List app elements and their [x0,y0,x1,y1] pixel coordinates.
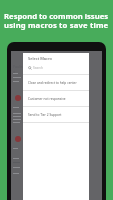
staticText: Search [33,66,43,70]
staticText: Customer not responsive [28,97,66,101]
staticText: Paulina [13,64,24,74]
button[interactable]: Send to Tier 2 Support [23,107,89,122]
staticText: Respond to common issues [4,11,109,21]
staticText: using macros to save time [4,20,109,30]
button[interactable]: Customer not responsive [23,91,89,106]
other: Search [28,66,32,70]
staticText: Close and redirect to help center [28,81,77,85]
staticText: Send to Tier 2 Support [28,113,62,117]
button[interactable]: Close and redirect to help center [23,75,89,90]
staticText: Select Macro [28,56,52,61]
button[interactable]: Search [28,66,89,70]
